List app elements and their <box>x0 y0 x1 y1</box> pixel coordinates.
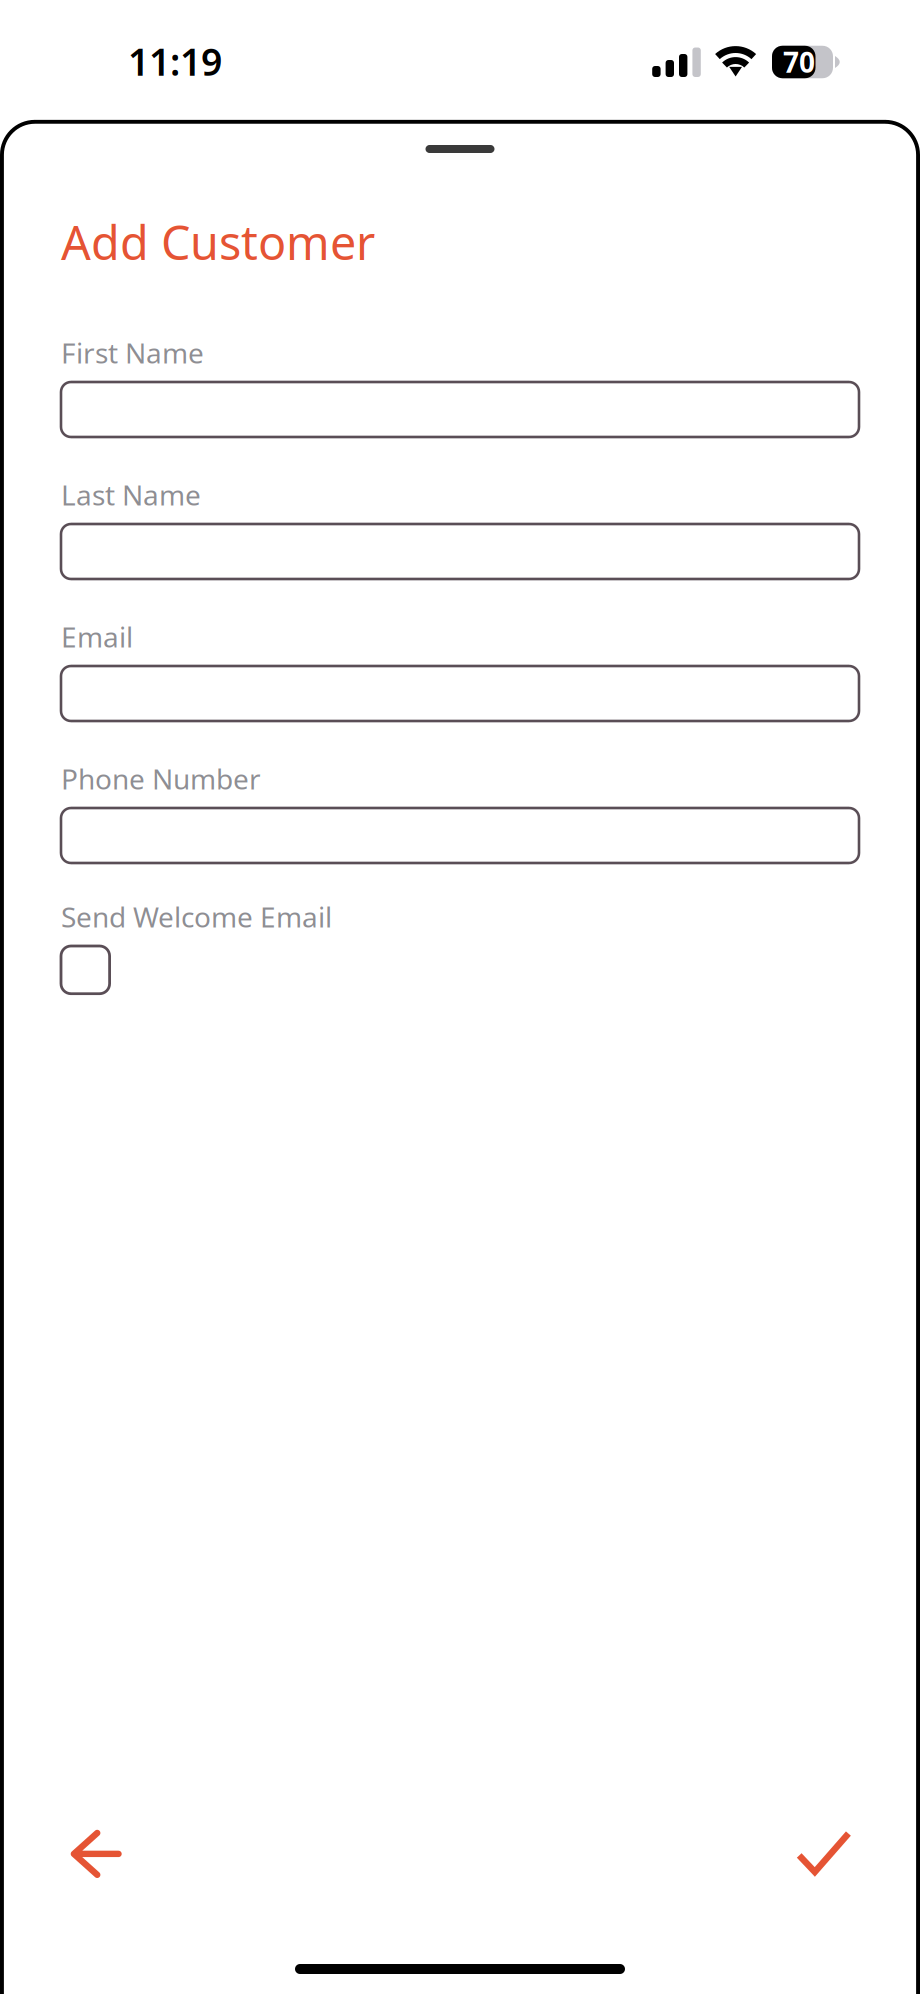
staticText: Phone Number <box>61 760 261 797</box>
button[interactable]: Save <box>797 1831 851 1876</box>
staticText: 11:19 <box>128 36 222 86</box>
staticText: Last Name <box>61 476 201 513</box>
button[interactable]: First Name <box>61 382 859 437</box>
button[interactable]: Back <box>71 1830 122 1878</box>
staticText: First Name <box>61 334 204 371</box>
staticText: Add Customer <box>61 211 375 273</box>
staticText: Email <box>61 618 133 655</box>
staticText: Send Welcome Email <box>61 898 332 935</box>
button[interactable]: Phone Number <box>61 808 859 863</box>
button[interactable]: Send Welcome Email <box>61 946 110 994</box>
button[interactable]: Email <box>61 666 859 721</box>
button[interactable]: Last Name <box>61 524 859 579</box>
staticText: 70 <box>783 43 815 81</box>
